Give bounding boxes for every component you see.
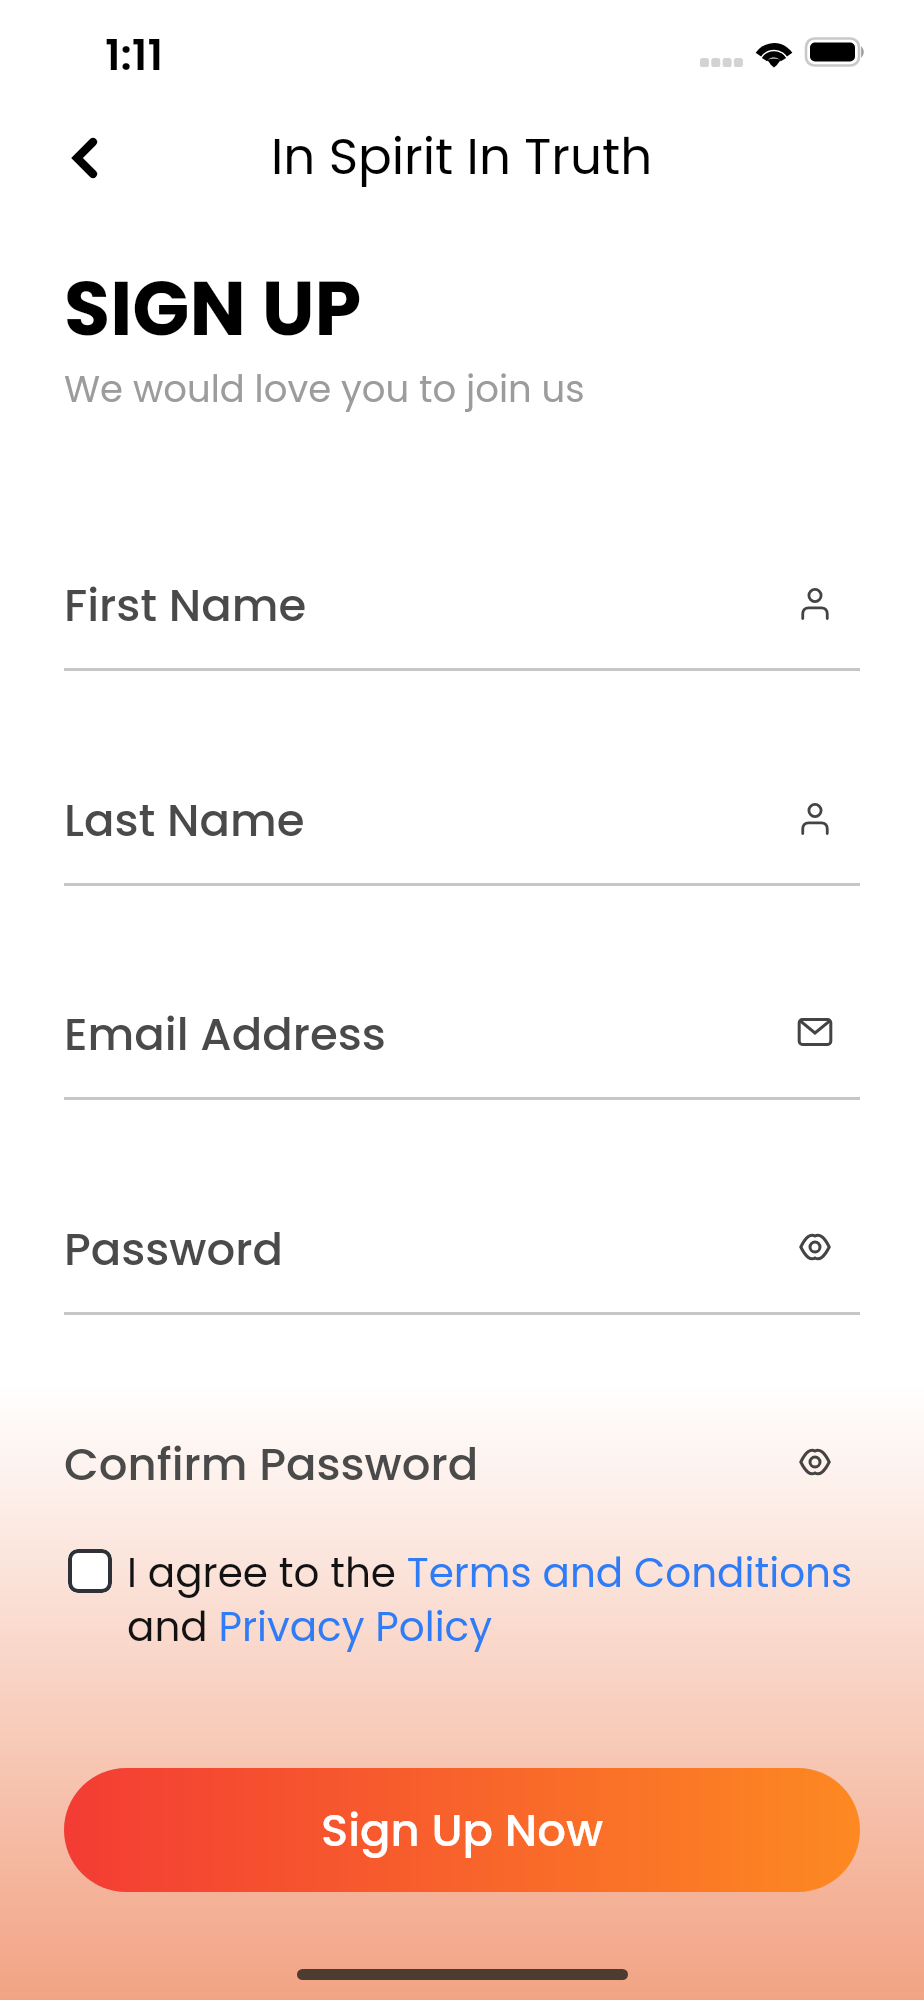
staticText: 1:11 (105, 25, 164, 85)
staticText: SIGN UP (64, 256, 362, 361)
staticText: Confirm Password (64, 1433, 479, 1496)
staticText: First Name (64, 574, 307, 637)
button[interactable]: Last Name (0, 768, 924, 886)
button[interactable]: Email Address (0, 982, 924, 1100)
staticText: Last Name (64, 789, 305, 852)
button[interactable]: I agree to the Terms and Conditions and … (64, 1544, 860, 1656)
staticText: I agree to the Terms and Conditions and … (127, 1544, 860, 1656)
button[interactable]: First Name (0, 553, 924, 671)
staticText: Email Address (64, 1003, 386, 1066)
button[interactable]: Confirm Password (0, 1412, 924, 1530)
staticText: We would love you to join us (64, 363, 585, 415)
button[interactable]: Sign Up Now (64, 1768, 860, 1892)
staticText: Password (64, 1218, 283, 1281)
button[interactable]: Back (45, 118, 125, 198)
button[interactable]: Password (0, 1197, 924, 1315)
staticText: In Spirit In Truth (271, 122, 653, 192)
staticText: Sign Up Now (321, 1799, 604, 1862)
